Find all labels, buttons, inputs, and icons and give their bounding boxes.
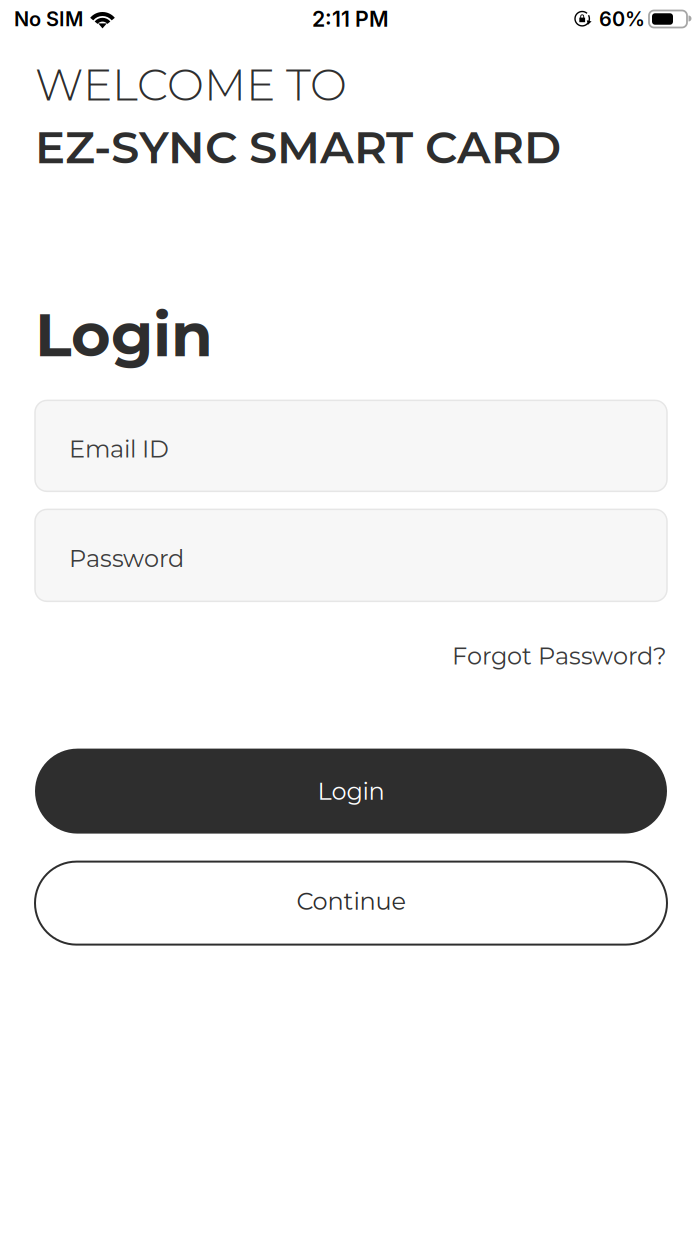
staticText: 2:11 PM (312, 6, 389, 32)
staticText: Continue (296, 886, 405, 916)
button[interactable]: Email ID (35, 400, 667, 491)
staticText: No SIM (14, 7, 83, 31)
staticText: Password (69, 544, 184, 573)
staticText: WELCOME TO (35, 58, 347, 112)
staticText: Login (35, 298, 213, 371)
staticText: Email ID (69, 434, 169, 463)
staticText: 60% (599, 7, 645, 31)
button[interactable]: Password (35, 509, 667, 601)
staticText: EZ-SYNC SMART CARD (35, 120, 561, 174)
staticText: Login (317, 776, 384, 806)
staticText: Forgot Password? (452, 641, 667, 671)
button[interactable]: Continue (35, 862, 667, 945)
button[interactable]: Forgot Password? (436, 632, 667, 680)
button[interactable]: Login (35, 749, 667, 834)
